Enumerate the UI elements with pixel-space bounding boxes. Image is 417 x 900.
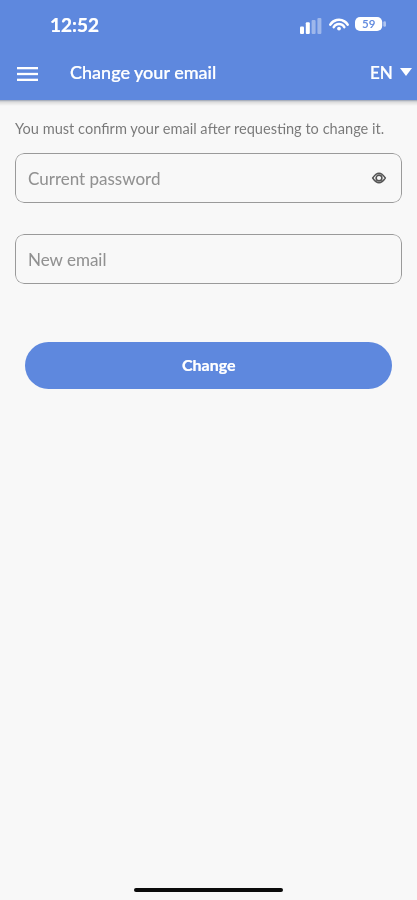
staticText: Change [182, 355, 236, 374]
staticText: 12:52 [50, 13, 99, 36]
button[interactable]: New email [15, 234, 402, 284]
button[interactable]: EN [368, 56, 414, 88]
button[interactable]: Open navigation menu [5, 52, 49, 96]
staticText: 59 [362, 17, 376, 31]
button[interactable]: Current password [15, 153, 402, 203]
staticText: You must confirm your email after reques… [15, 120, 385, 138]
staticText: Change your email [70, 61, 217, 83]
staticText: Current password [28, 168, 161, 188]
staticText: New email [28, 249, 107, 269]
button[interactable]: Show password [366, 165, 392, 191]
button[interactable]: Change [25, 342, 392, 389]
staticText: EN [370, 62, 393, 82]
